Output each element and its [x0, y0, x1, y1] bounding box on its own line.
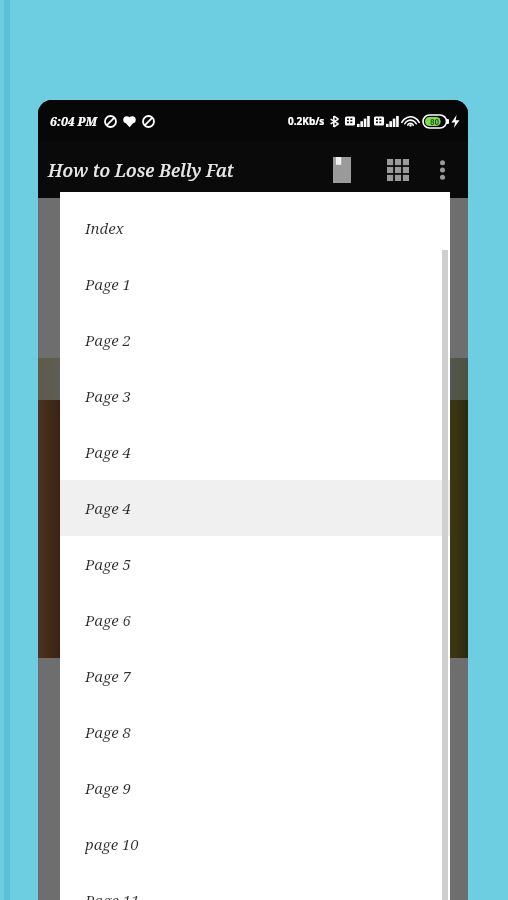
button[interactable]: Index: [60, 200, 450, 256]
button[interactable]: More options: [422, 150, 462, 190]
staticText: Page 3: [85, 386, 132, 406]
staticText: page 10: [85, 834, 139, 854]
button[interactable]: Page 8: [60, 704, 450, 760]
button[interactable]: Page 4: [60, 424, 450, 480]
button[interactable]: Page 3: [60, 368, 450, 424]
button[interactable]: Page 5: [60, 536, 450, 592]
button[interactable]: Page 11: [60, 872, 450, 900]
button[interactable]: page 10: [60, 816, 450, 872]
button[interactable]: Page 9: [60, 760, 450, 816]
staticText: 80: [430, 116, 440, 127]
button[interactable]: Page 1: [60, 256, 450, 312]
button[interactable]: Page 6: [60, 592, 450, 648]
button[interactable]: Page 2: [60, 312, 450, 368]
staticText: Page 11: [85, 890, 140, 900]
staticText: Page 8: [85, 722, 132, 742]
button[interactable]: Page 7: [60, 648, 450, 704]
staticText: Page 4: [85, 498, 132, 518]
staticText: Page 2: [85, 330, 132, 350]
staticText: Page 7: [85, 666, 132, 686]
staticText: Page 1: [85, 274, 132, 294]
staticText: 0.2Kb/s: [288, 114, 325, 128]
staticText: How to Lose Belly Fat: [48, 158, 234, 183]
staticText: Page 6: [85, 610, 132, 630]
staticText: Index: [85, 218, 124, 238]
staticText: Page 4: [85, 442, 132, 462]
button[interactable]: Bookmark: [318, 146, 366, 194]
staticText: Page 5: [85, 554, 132, 574]
staticText: Page 9: [85, 778, 132, 798]
button[interactable]: Grid view: [374, 146, 422, 194]
button[interactable]: Page 4: [60, 480, 450, 536]
staticText: 6:04 PM: [50, 113, 97, 129]
